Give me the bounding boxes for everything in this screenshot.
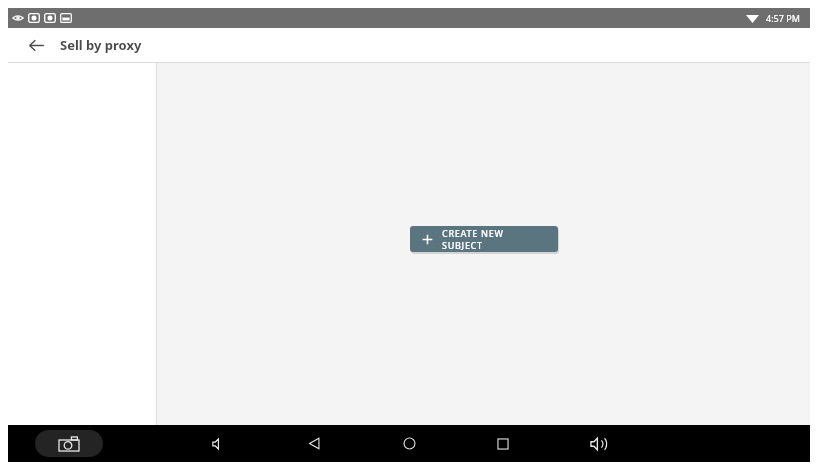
staticText: CREATE NEW SUBJECT <box>442 227 546 251</box>
button[interactable]: Recents <box>484 427 522 460</box>
button[interactable]: Back <box>295 427 333 460</box>
button[interactable]: Volume down <box>200 427 238 460</box>
staticText: Sell by proxy <box>60 36 142 54</box>
button[interactable]: Back <box>24 33 48 57</box>
button[interactable]: Home <box>390 427 428 460</box>
button[interactable]: CREATE NEW SUBJECT <box>410 226 558 252</box>
button[interactable]: Volume up <box>579 427 617 460</box>
button[interactable]: Screenshot <box>35 430 103 457</box>
staticText: 4:57 PM <box>766 12 800 24</box>
